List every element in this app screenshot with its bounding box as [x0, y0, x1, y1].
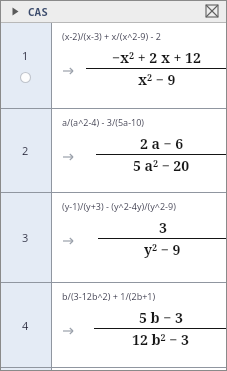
button[interactable]: 2	[0, 109, 51, 192]
button[interactable]: 2	[0, 109, 227, 192]
staticText: 2 a − 6	[140, 134, 184, 153]
staticText: 3	[159, 218, 167, 237]
staticText: 12 b2 − 3	[132, 330, 189, 349]
staticText: −x2 + 2 x + 12	[112, 48, 201, 67]
staticText: (x-2)/(x-3) + x/(x^2-9) - 2	[62, 30, 161, 42]
button[interactable]: Collapse CAS view	[8, 4, 22, 18]
staticText: 3	[22, 230, 29, 245]
staticText: (y-1)/(y+3) - (y^2-4y)/(y^2-9)	[62, 200, 176, 212]
staticText: 5 a2 − 20	[133, 156, 190, 175]
button[interactable]: 4	[0, 283, 227, 367]
button[interactable]: Collapse CAS view	[0, 0, 227, 22]
staticText: b/(3-12b^2) + 1/(2b+1)	[62, 290, 156, 302]
staticText: 2	[22, 143, 29, 158]
staticText: a/(a^2-4) - 3/(5a-10)	[62, 116, 145, 128]
button[interactable]: Close CAS view	[203, 2, 221, 20]
button[interactable]: 1	[0, 23, 51, 108]
button[interactable]: 1	[0, 23, 227, 108]
staticText: 5 b − 3	[139, 308, 183, 327]
button[interactable]: 3	[0, 193, 227, 282]
staticText: 1	[22, 48, 29, 63]
staticText: y2 − 9	[144, 240, 181, 259]
button[interactable]: 3	[0, 193, 51, 282]
button[interactable]: 4	[0, 283, 51, 367]
staticText: CAS	[28, 4, 48, 19]
staticText: 4	[22, 318, 29, 333]
staticText: x2 − 9	[138, 70, 176, 89]
